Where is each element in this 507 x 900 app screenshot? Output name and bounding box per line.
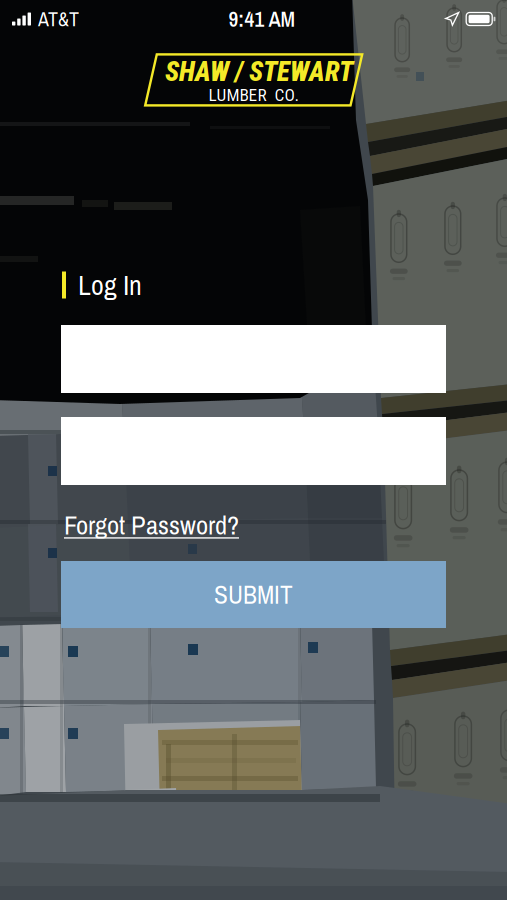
- staticText: SHAW / STEWART: [165, 56, 353, 88]
- staticText: Log In: [78, 266, 142, 304]
- button[interactable]: Forgot Password?: [62, 501, 241, 549]
- button[interactable]: SUBMIT: [61, 561, 446, 628]
- staticText: 9:41 AM: [229, 5, 296, 33]
- staticText: LUMBER CO.: [208, 85, 299, 105]
- staticText: AT&T: [38, 5, 79, 32]
- staticText: Forgot Password?: [64, 507, 239, 543]
- staticText: SUBMIT: [214, 577, 293, 611]
